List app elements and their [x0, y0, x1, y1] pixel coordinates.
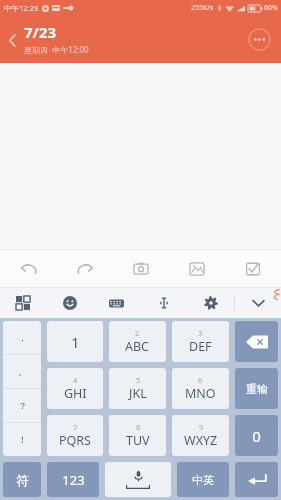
staticText: 星期四 中午12:00	[24, 44, 89, 55]
staticText: GHI	[64, 385, 87, 402]
staticText: 重输	[246, 382, 268, 396]
button[interactable]: 8	[109, 415, 166, 456]
staticText: WXYZ	[184, 432, 218, 449]
staticText: 。	[18, 366, 27, 377]
button[interactable]: 1	[47, 321, 103, 362]
button[interactable]: 5	[109, 368, 166, 409]
button[interactable]: Insert image	[169, 250, 225, 287]
button[interactable]: 2	[109, 321, 166, 362]
staticText: 255K/s	[191, 3, 214, 13]
staticText: 8	[136, 422, 141, 432]
button[interactable]: 。	[3, 355, 41, 388]
staticText: 4	[73, 375, 78, 385]
button[interactable]: Emoji	[46, 288, 93, 318]
button[interactable]: 0	[235, 415, 278, 456]
staticText: 9	[199, 422, 204, 432]
staticText: 1	[71, 332, 80, 352]
button[interactable]: 3	[172, 321, 229, 362]
staticText: ！	[18, 434, 27, 445]
button[interactable]: Hide keyboard	[244, 288, 272, 318]
staticText: 7/23	[24, 22, 56, 42]
button[interactable]: Settings	[187, 288, 234, 318]
staticText: ABC	[125, 338, 150, 355]
button[interactable]: 符	[3, 462, 41, 497]
staticText: 5	[136, 375, 141, 385]
staticText: DEF	[189, 338, 212, 355]
button[interactable]: 9	[172, 415, 229, 456]
button[interactable]: 重输	[235, 368, 278, 409]
button[interactable]: 6	[172, 368, 229, 409]
button[interactable]: Delete	[235, 321, 278, 362]
button[interactable]: Voice input	[105, 462, 171, 497]
button[interactable]: Checklist	[225, 250, 281, 287]
button[interactable]: Take photo	[113, 250, 169, 287]
staticText: ，	[18, 332, 27, 343]
staticText: 符	[16, 472, 29, 488]
staticText: TUV	[126, 432, 150, 449]
staticText: MNO	[185, 385, 216, 402]
button[interactable]: Back	[0, 28, 24, 52]
staticText: PQRS	[59, 432, 91, 449]
staticText: 0	[252, 426, 261, 446]
staticText: 7	[73, 422, 78, 432]
button[interactable]: 123	[47, 462, 99, 497]
button[interactable]: 7	[47, 415, 103, 456]
button[interactable]: ？	[3, 389, 41, 422]
button[interactable]: Redo	[57, 250, 113, 287]
button[interactable]: Enter	[235, 462, 278, 497]
button[interactable]: ，	[3, 321, 41, 354]
staticText: 中英	[192, 473, 214, 487]
staticText: 123	[62, 471, 85, 489]
button[interactable]: ！	[3, 423, 41, 456]
button[interactable]: 4	[47, 368, 103, 409]
button[interactable]: 中英	[177, 462, 229, 497]
staticText: ？	[18, 400, 27, 411]
button[interactable]: Apps	[0, 288, 46, 318]
staticText: JKL	[129, 385, 147, 402]
staticText: 3	[198, 328, 203, 338]
staticText: 60%	[264, 3, 278, 13]
button[interactable]: More options	[248, 28, 271, 51]
staticText: 2	[135, 328, 140, 338]
button[interactable]: Undo	[0, 250, 57, 287]
staticText: 6	[198, 375, 203, 385]
staticText: 中午12:29	[4, 3, 39, 13]
button[interactable]: Keyboard layout	[93, 288, 140, 318]
button[interactable]: Move cursor	[140, 288, 187, 318]
